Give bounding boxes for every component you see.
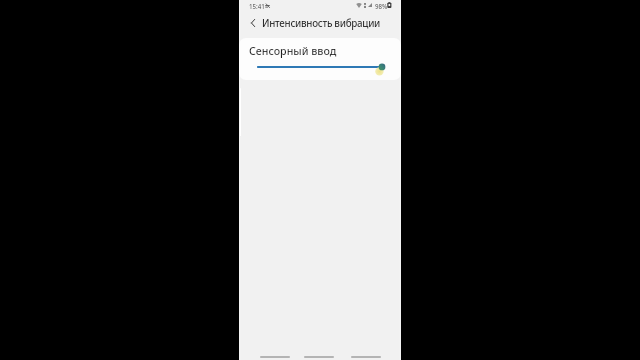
button[interactable]: Back — [244, 12, 261, 34]
staticText: Интенсивность вибрации — [262, 17, 381, 30]
staticText: Сенсорный ввод — [249, 44, 337, 59]
button[interactable]: Сенсорный ввод — [239, 38, 401, 80]
button[interactable]: Touch input vibration intensity slider — [253, 59, 395, 77]
button[interactable]: Back — [344, 338, 388, 360]
staticText: 15:41 — [249, 2, 265, 10]
staticText: 98% — [375, 2, 388, 10]
button[interactable]: Recents — [253, 338, 297, 360]
button[interactable]: Home — [297, 338, 341, 360]
